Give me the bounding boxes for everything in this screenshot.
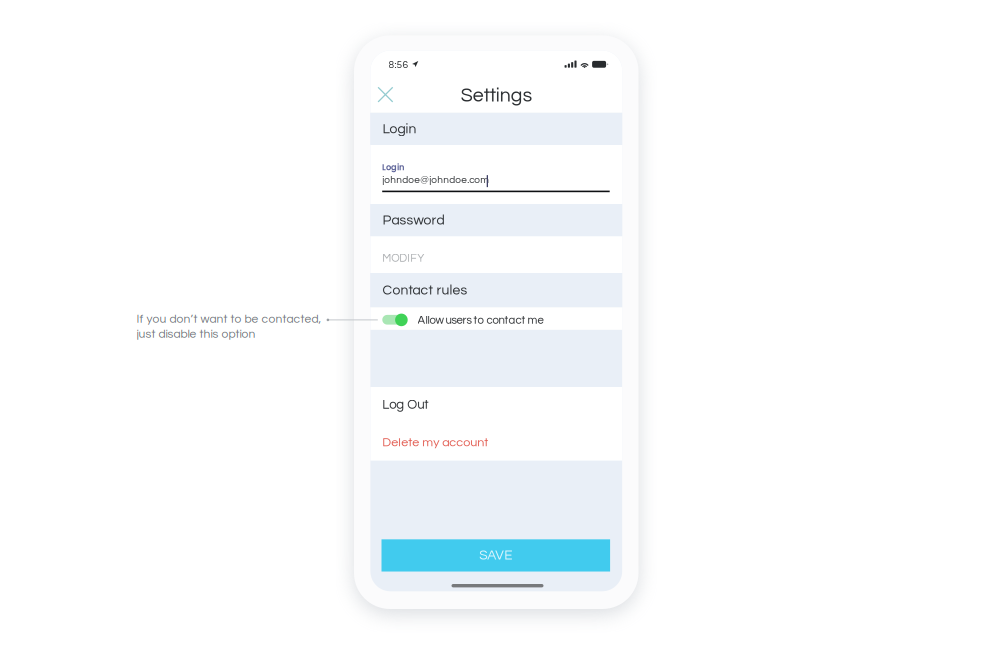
staticText: MODIFY (382, 252, 424, 264)
button[interactable]: Allow users to contact me (370, 307, 622, 330)
staticText: just disable this option (136, 328, 255, 340)
staticText: Login (382, 161, 404, 173)
staticText: Password (382, 213, 444, 227)
staticText: johndoe@johndoe.com (382, 175, 489, 185)
staticText: Allow users to contact me (418, 314, 544, 326)
staticText: 8:56 (389, 60, 409, 70)
button[interactable]: Delete my account (370, 423, 622, 461)
staticText: SAVE (479, 548, 512, 562)
staticText: Settings (461, 85, 532, 105)
button[interactable]: Close (370, 50, 404, 84)
staticText: Log Out (382, 398, 428, 412)
staticText: If you don’t want to be contacted, (136, 313, 321, 325)
staticText: Contact rules (382, 283, 467, 297)
button[interactable]: Log Out (370, 387, 622, 423)
staticText: Login (382, 122, 416, 136)
button[interactable]: SAVE (382, 539, 610, 571)
button[interactable]: MODIFY (370, 236, 622, 273)
staticText: Delete my account (382, 436, 488, 449)
